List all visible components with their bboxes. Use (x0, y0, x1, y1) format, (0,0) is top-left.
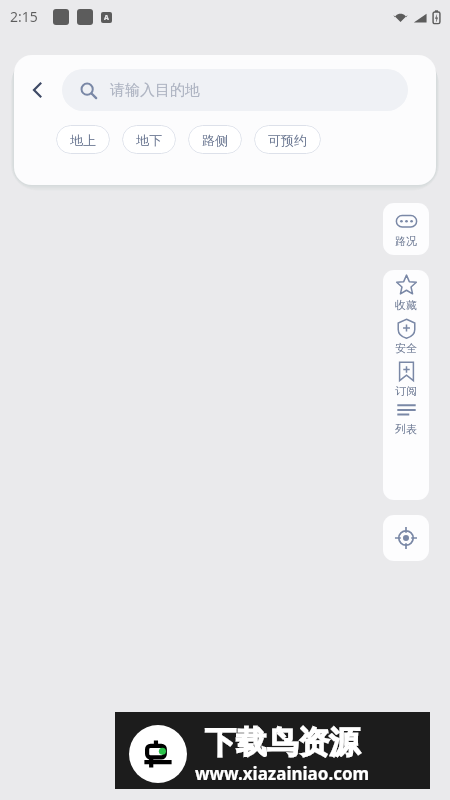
staticText: 2:15 (10, 7, 38, 26)
staticText: A (104, 13, 109, 23)
button[interactable]: 请输入目的地 (62, 69, 408, 111)
staticText: 订阅 (395, 384, 417, 398)
staticText: 安全 (395, 341, 417, 355)
button[interactable]: 路况 (383, 210, 429, 248)
button[interactable]: 订阅 (383, 360, 429, 398)
staticText: 路侧 (202, 132, 228, 148)
staticText: 地上 (70, 132, 96, 148)
staticText: 请输入目的地 (110, 81, 200, 100)
staticText: 列表 (395, 422, 417, 436)
button[interactable]: 定位 (383, 515, 429, 561)
button[interactable]: 地上 (56, 125, 110, 154)
button[interactable]: Back (14, 64, 62, 116)
button[interactable]: 路侧 (188, 125, 242, 154)
staticText: 收藏 (395, 298, 417, 312)
button[interactable]: 收藏 (383, 274, 429, 312)
button[interactable]: 安全 (383, 317, 429, 355)
staticText: 路况 (395, 234, 417, 248)
button[interactable]: 列表 (383, 398, 429, 436)
button[interactable]: 可预约 (254, 125, 321, 154)
staticText: 地下 (136, 132, 162, 148)
staticText: www.xiazainiao.com (195, 762, 370, 785)
staticText: 可预约 (268, 132, 307, 148)
button[interactable]: 地下 (122, 125, 176, 154)
staticText: 下载鸟资源 (205, 723, 360, 762)
